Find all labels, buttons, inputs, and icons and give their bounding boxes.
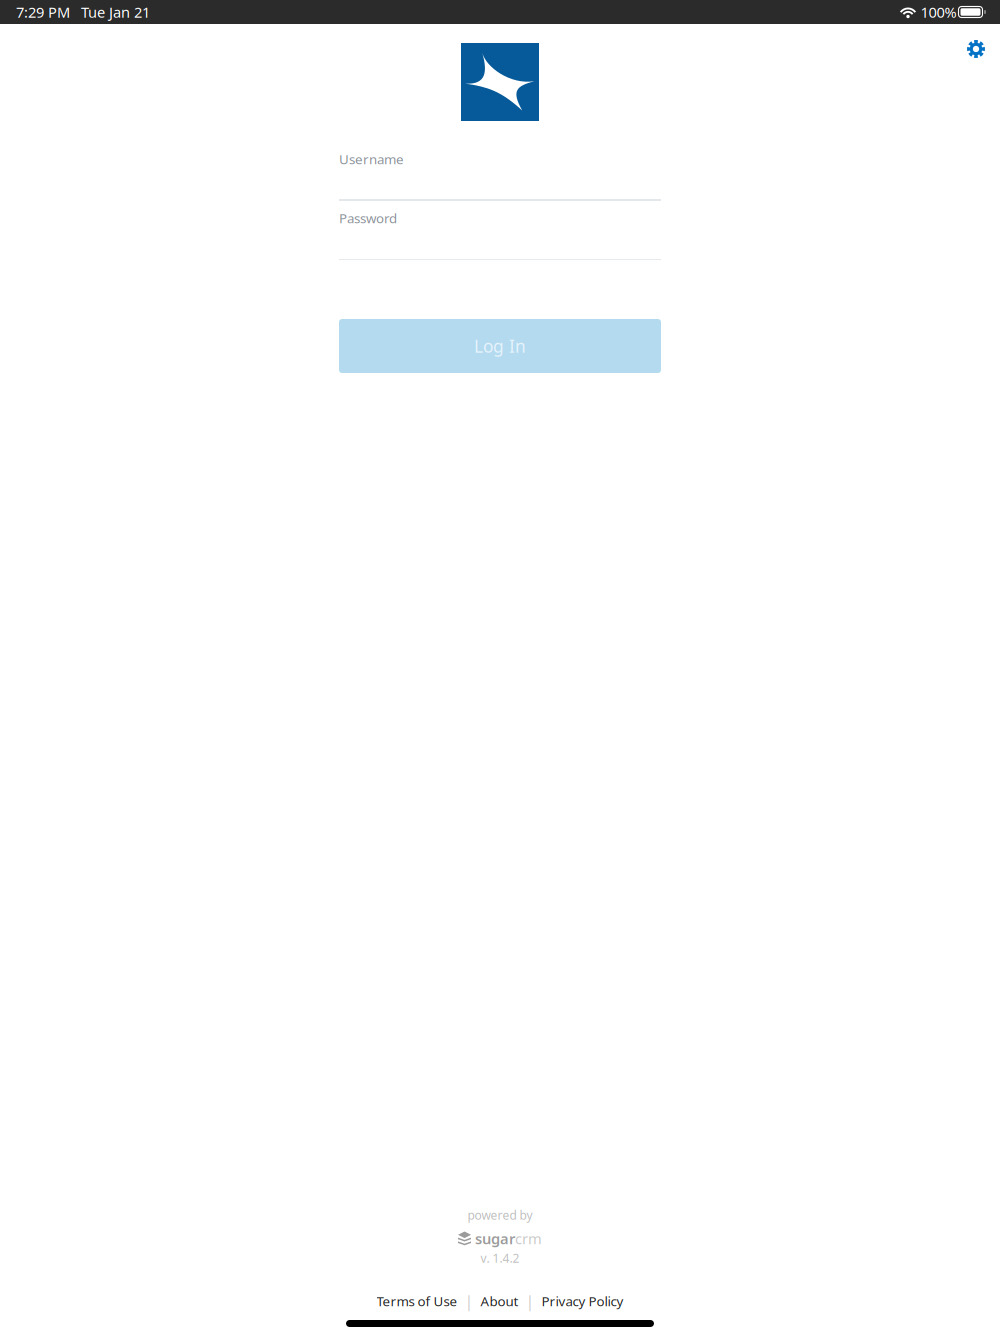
button[interactable]: Privacy Policy (541, 1292, 623, 1310)
staticText: Terms of Use (376, 1292, 457, 1310)
button[interactable]: Log In (339, 319, 661, 373)
staticText: | (464, 1290, 473, 1312)
button[interactable]: Terms of Use (376, 1292, 457, 1310)
button[interactable]: About (480, 1292, 518, 1310)
staticText: About (480, 1292, 518, 1310)
staticText: v. 1.4.2 (480, 1250, 519, 1266)
staticText: Tue Jan 21 (81, 2, 150, 22)
staticText: powered by (467, 1207, 532, 1223)
staticText: crm (515, 1229, 542, 1248)
staticText: 100% (920, 2, 956, 22)
button[interactable]: Settings (951, 24, 1000, 74)
staticText: Privacy Policy (541, 1292, 623, 1310)
staticText: sugar (475, 1229, 515, 1248)
staticText: Username (339, 150, 404, 168)
staticText: Log In (474, 334, 526, 357)
staticText: 7:29 PM (16, 2, 70, 22)
staticText: | (525, 1290, 534, 1312)
staticText: Password (339, 209, 397, 227)
